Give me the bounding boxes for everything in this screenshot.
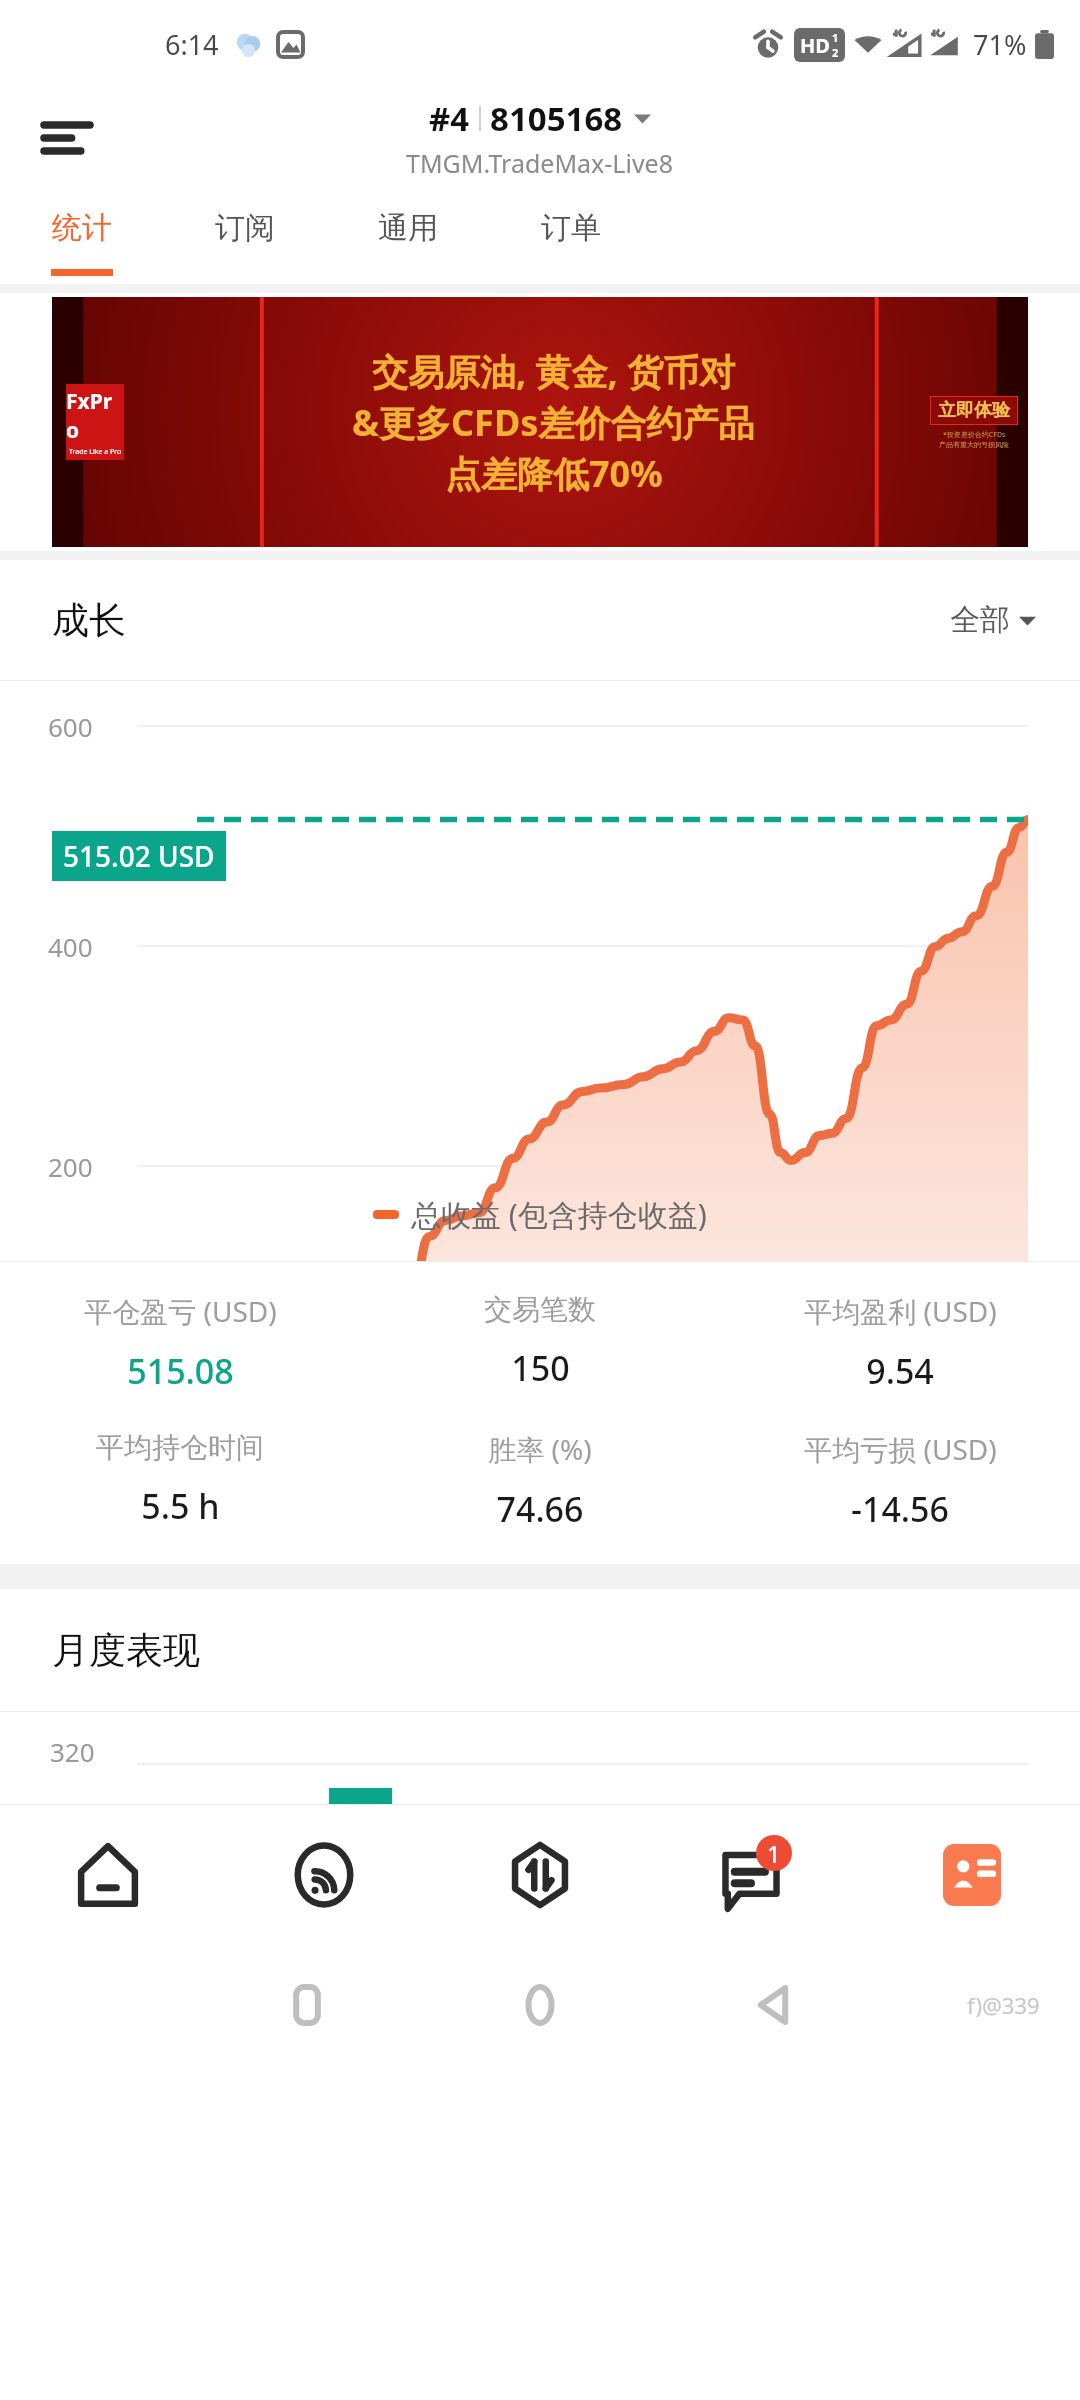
staticText: 5.5 h <box>141 1483 220 1529</box>
staticText: 74.66 <box>496 1486 584 1532</box>
staticText: 1 <box>767 1838 781 1869</box>
staticText: 点差降低70% <box>445 449 663 498</box>
staticText: HD <box>800 32 830 59</box>
staticText: 320 <box>50 1734 95 1769</box>
staticText: 8105168 <box>490 96 623 141</box>
button[interactable]: Signals <box>216 1805 432 1945</box>
staticText: 2 <box>832 45 839 60</box>
staticText: 6:14 <box>165 26 219 63</box>
button[interactable]: FxPro <box>52 297 1028 547</box>
staticText: #4 <box>429 96 470 141</box>
staticText: 515.08 <box>127 1348 234 1394</box>
button[interactable]: Profile <box>864 1805 1080 1945</box>
staticText: Trade Like a Pro <box>69 447 122 457</box>
staticText: TMGM.TradeMax-Live8 <box>406 146 674 180</box>
button[interactable]: 平均亏损 (USD) <box>720 1430 1080 1532</box>
staticText: 平仓盈亏 (USD) <box>84 1292 277 1330</box>
staticText: 200 <box>48 1149 93 1184</box>
button[interactable]: 统计 <box>0 188 163 284</box>
staticText: 平均盈利 (USD) <box>804 1292 997 1330</box>
button[interactable]: Back <box>741 1973 805 2037</box>
button[interactable]: 订单 <box>489 188 652 284</box>
staticText: *投资差价合约CFDs <box>943 430 1006 440</box>
button[interactable]: #4 <box>406 96 674 180</box>
button[interactable]: 胜率 (%) <box>360 1430 720 1532</box>
button[interactable]: Menu <box>30 101 104 175</box>
staticText: 平均亏损 (USD) <box>804 1430 997 1468</box>
staticText: 订单 <box>541 209 601 247</box>
staticText: 产品有重大的亏损风险 <box>939 440 1009 449</box>
staticText: 总收益 (包含持仓收益) <box>411 1194 707 1235</box>
staticText: 交易笔数 <box>484 1292 596 1327</box>
staticText: f)@339 <box>967 1990 1040 2020</box>
button[interactable]: 通用 <box>326 188 489 284</box>
button[interactable]: Recents <box>275 1973 339 2037</box>
staticText: 胜率 (%) <box>488 1430 592 1468</box>
button[interactable]: 全部 <box>950 601 1036 639</box>
button[interactable]: Home <box>0 1805 216 1945</box>
staticText: 平均持仓时间 <box>96 1430 264 1465</box>
staticText: 交易原油, 黄金, 货币对 <box>372 347 736 396</box>
staticText: 订阅 <box>215 209 275 247</box>
button[interactable]: Home <box>508 1973 572 2037</box>
staticText: 9.54 <box>866 1348 934 1394</box>
button[interactable]: 平仓盈亏 (USD) <box>0 1292 360 1394</box>
staticText: &更多CFDs差价合约产品 <box>352 398 755 447</box>
staticText: 全部 <box>950 601 1010 639</box>
staticText: 400 <box>48 929 93 964</box>
staticText: 71% <box>973 26 1027 63</box>
staticText: 1 <box>832 30 839 45</box>
button[interactable]: Messages <box>648 1805 864 1945</box>
staticText: 成长 <box>52 597 126 644</box>
staticText: 150 <box>511 1345 570 1391</box>
button[interactable]: 交易笔数 <box>360 1292 720 1391</box>
staticText: 统计 <box>52 209 112 247</box>
button[interactable]: 平均盈利 (USD) <box>720 1292 1080 1394</box>
staticText: -14.56 <box>851 1486 949 1532</box>
button[interactable]: 订阅 <box>163 188 326 284</box>
button[interactable]: Trade <box>432 1805 648 1945</box>
staticText: 600 <box>48 709 93 744</box>
staticText: FxPro <box>66 387 124 445</box>
staticText: 月度表现 <box>52 1627 200 1674</box>
staticText: 通用 <box>378 209 438 247</box>
staticText: 515.02 USD <box>63 837 215 875</box>
staticText: 立即体验 <box>938 399 1010 422</box>
button[interactable]: 平均持仓时间 <box>0 1430 360 1529</box>
